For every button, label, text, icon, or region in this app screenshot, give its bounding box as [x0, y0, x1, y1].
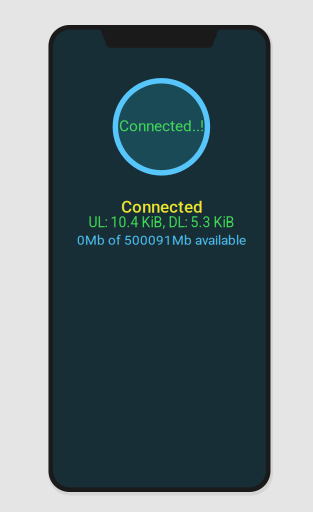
staticText: UL: 10.4 KiB, DL: 5.3 KiB — [88, 214, 234, 231]
staticText: 0Mb of 500091Mb available — [77, 232, 246, 248]
staticText: Connected — [121, 197, 202, 217]
staticText: Connected..! — [119, 117, 204, 135]
